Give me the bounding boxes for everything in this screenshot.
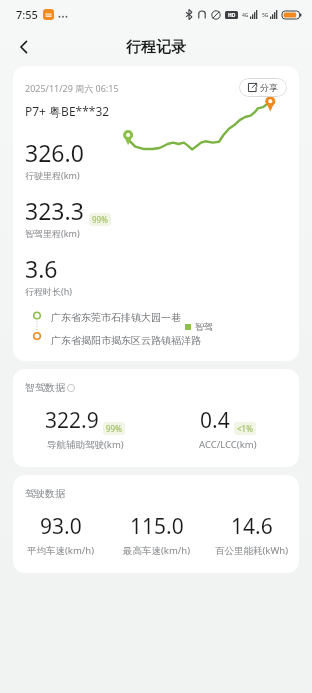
staticText: <1% xyxy=(237,423,253,434)
staticText: HD xyxy=(228,12,236,19)
staticText: 99% xyxy=(106,423,122,434)
staticText: 99% xyxy=(92,214,108,225)
staticText: 322.9 xyxy=(45,406,99,435)
staticText: 广东省东莞市石排镇大园一巷 xyxy=(51,311,181,324)
staticText: P7+ 粤BE***32 xyxy=(25,103,110,119)
staticText: ACC/LCC(km) xyxy=(199,438,257,451)
staticText: 93.0 xyxy=(40,512,82,541)
staticText: 115.0 xyxy=(130,512,184,541)
staticText: 智驾数据 xyxy=(25,381,65,394)
staticText: 最高车速(km/h) xyxy=(123,544,191,557)
button[interactable]: Back xyxy=(8,31,40,63)
staticText: 百公里能耗(kWh) xyxy=(215,544,288,557)
staticText: 分享 xyxy=(260,82,278,93)
staticText: 行程时长(h) xyxy=(25,285,72,297)
staticText: 行驶里程(km) xyxy=(25,169,80,181)
staticText: 326.0 xyxy=(25,137,84,168)
staticText: 驾驶数据 xyxy=(25,487,65,500)
staticText: 平均车速(km/h) xyxy=(27,544,95,557)
staticText: 14.6 xyxy=(231,512,273,541)
staticText: 0.4 xyxy=(200,406,230,435)
button[interactable]: 分享 xyxy=(239,78,287,97)
staticText: 5G xyxy=(262,12,269,19)
staticText: 4G xyxy=(242,12,249,19)
staticText: 广东省揭阳市揭东区云路镇福洋路 xyxy=(51,334,201,347)
staticText: 导航辅助驾驶(km) xyxy=(47,438,124,451)
staticText: 智驾 xyxy=(195,321,213,332)
staticText: 3.6 xyxy=(25,253,58,284)
staticText: 智驾里程(km) xyxy=(25,227,80,239)
staticText: 2025/11/29 周六 06:15 xyxy=(25,82,119,94)
staticText: 7:55 xyxy=(16,7,38,22)
staticText: 行程记录 xyxy=(126,38,186,57)
staticText: 323.3 xyxy=(25,195,84,226)
